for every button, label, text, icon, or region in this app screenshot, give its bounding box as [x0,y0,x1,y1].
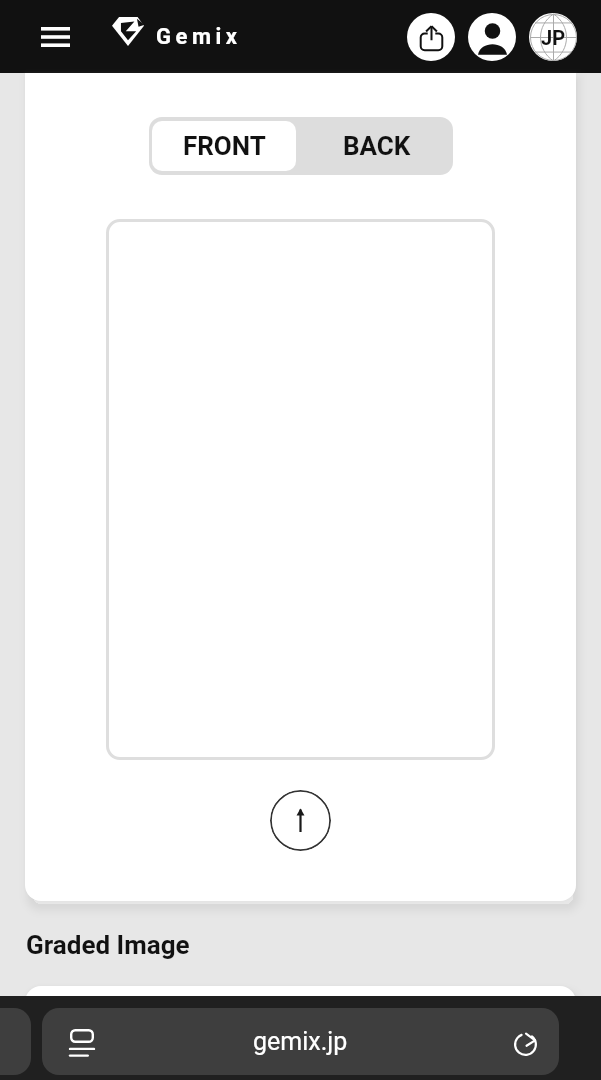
staticText: Gemix [156,24,242,50]
button[interactable]: Language JP [529,13,577,61]
button[interactable]: Account [468,13,516,61]
button[interactable]: Previous tab [0,1008,31,1075]
button[interactable]: Gemix [112,22,242,51]
button[interactable]: Reload [503,1020,547,1064]
button[interactable]: Upload [270,790,331,851]
button[interactable]: Menu [30,12,80,62]
staticText: Graded Image [26,930,190,960]
button[interactable]: Share [407,13,455,61]
staticText: BACK [343,131,411,161]
staticText: gemix.jp [253,1027,348,1056]
button[interactable]: BACK [301,117,453,175]
staticText: JP [541,26,566,49]
staticText: FRONT [183,131,266,161]
button[interactable]: Reader view [60,1020,104,1064]
button[interactable]: FRONT [152,121,296,171]
